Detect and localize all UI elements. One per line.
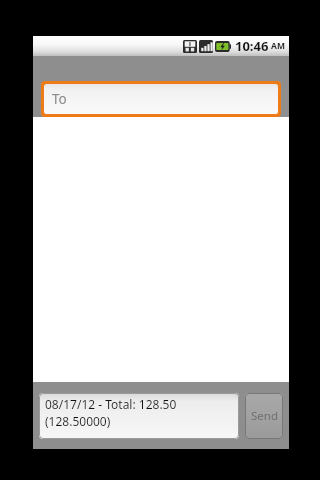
- staticText: Send: [251, 408, 278, 424]
- staticText: 08/17/12 - Total: 128.50: [45, 396, 177, 412]
- staticText: 10:46: [235, 37, 269, 55]
- button[interactable]: Send: [245, 393, 283, 439]
- button[interactable]: To: [41, 81, 281, 117]
- button[interactable]: 08/17/12 - Total: 128.50: [39, 393, 239, 439]
- staticText: AM: [271, 40, 285, 52]
- staticText: To: [52, 90, 67, 108]
- staticText: (128.50000): [45, 413, 111, 429]
